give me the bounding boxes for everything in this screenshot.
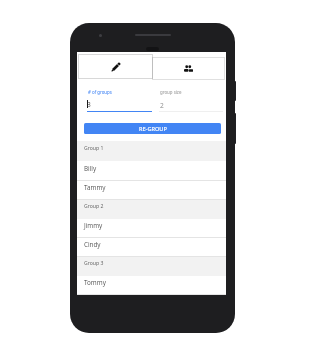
button[interactable]: Tammy	[77, 181, 226, 200]
staticText: Group 2	[84, 203, 104, 210]
staticText: RE-GROUP	[139, 125, 167, 133]
button[interactable]: Billy	[77, 161, 226, 181]
staticText: 2	[160, 101, 164, 110]
staticText: Cindy	[84, 240, 101, 249]
button[interactable]: Group 3	[77, 257, 226, 276]
staticText: 3	[87, 100, 91, 109]
button[interactable]: Group 1	[77, 141, 226, 161]
button[interactable]: Tommy	[77, 276, 226, 295]
staticText: group size	[160, 89, 182, 95]
staticText: Tammy	[84, 183, 106, 192]
button[interactable]: Group 2	[77, 200, 226, 219]
button[interactable]: Jimmy	[77, 219, 226, 238]
button[interactable]: RE-GROUP	[84, 123, 221, 134]
staticText: Tommy	[84, 278, 106, 287]
staticText: # of groups	[88, 89, 112, 95]
button[interactable]: Groups	[152, 57, 225, 80]
staticText: Jimmy	[84, 221, 103, 230]
button[interactable]: group size	[159, 82, 223, 112]
button[interactable]: # of groups	[86, 82, 152, 112]
staticText: Group 3	[84, 260, 104, 267]
button[interactable]: Cindy	[77, 238, 226, 257]
staticText: Billy	[84, 164, 97, 173]
staticText: Group 1	[84, 145, 104, 152]
button[interactable]: Edit names	[78, 54, 153, 79]
